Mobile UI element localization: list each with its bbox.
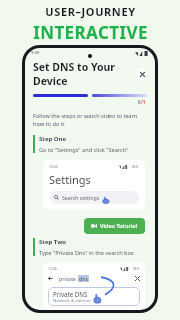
staticText: Go to "Settings" and click "Search" <box>39 146 129 154</box>
staticText: dns <box>79 275 88 282</box>
staticText: USER–JOURNEY <box>45 4 136 19</box>
staticText: Follow the steps or watch video to learn… <box>33 112 147 128</box>
staticText: 86% <box>133 267 140 271</box>
staticText: Settings <box>49 172 91 187</box>
staticText: Step One <box>39 135 67 143</box>
staticText: 0 <box>138 99 141 105</box>
staticText: 12:45 <box>49 164 58 169</box>
staticText: 9:00 <box>31 50 40 56</box>
staticText: /1 <box>141 99 146 105</box>
staticText: INTERACTIVE <box>33 21 148 44</box>
staticText: 12:45 <box>48 266 57 271</box>
staticText: private <box>59 275 78 282</box>
staticText: Search settings <box>62 194 100 201</box>
staticText: Network & internet <box>53 298 91 303</box>
staticText: Type "Private Dns" in the search box <box>39 249 134 257</box>
staticText: Video Tutorial <box>100 222 138 230</box>
button[interactable]: Search settings <box>49 191 139 204</box>
staticText: 86% <box>132 165 139 169</box>
button[interactable]: Close <box>136 68 148 80</box>
button[interactable]: Private DNS <box>48 287 140 306</box>
staticText: Private DNS <box>53 290 88 298</box>
button[interactable]: Video Tutorial <box>84 218 145 234</box>
staticText: Step Two <box>39 238 67 246</box>
staticText: Set DNS to Your Device <box>33 60 136 88</box>
